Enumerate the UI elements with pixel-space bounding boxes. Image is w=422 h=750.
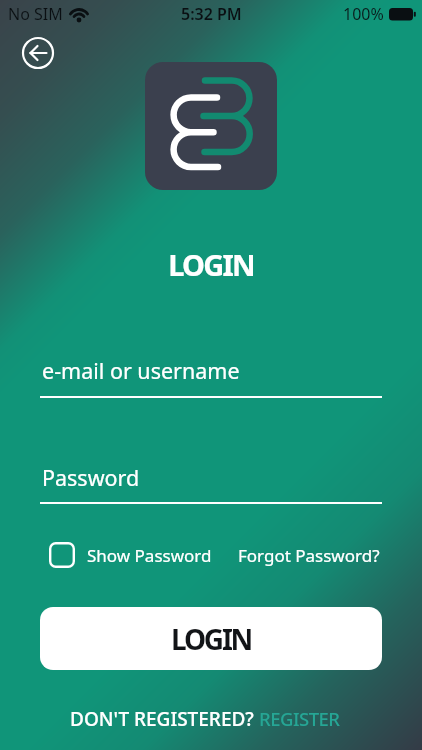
staticText: 100%	[343, 3, 384, 25]
button[interactable]: LOGIN	[40, 607, 382, 670]
button[interactable]: Password	[40, 463, 382, 504]
staticText: No SIM	[8, 3, 63, 25]
staticText: Show Password	[87, 544, 212, 567]
button[interactable]: REGISTER	[259, 706, 340, 731]
button[interactable]: Show Password	[49, 542, 212, 568]
staticText: Password	[42, 463, 140, 492]
button[interactable]: Forgot Password?	[238, 544, 380, 567]
staticText: LOGIN	[0, 245, 422, 284]
staticText: e-mail or username	[42, 356, 240, 385]
staticText: REGISTER	[259, 706, 340, 731]
staticText: Forgot Password?	[238, 544, 380, 567]
button[interactable]	[22, 37, 54, 69]
staticText: DON'T REGISTERED?	[70, 706, 254, 732]
staticText: LOGIN	[171, 620, 252, 658]
staticText: 5:32 PM	[181, 3, 242, 25]
button[interactable]: e-mail or username	[40, 356, 382, 398]
